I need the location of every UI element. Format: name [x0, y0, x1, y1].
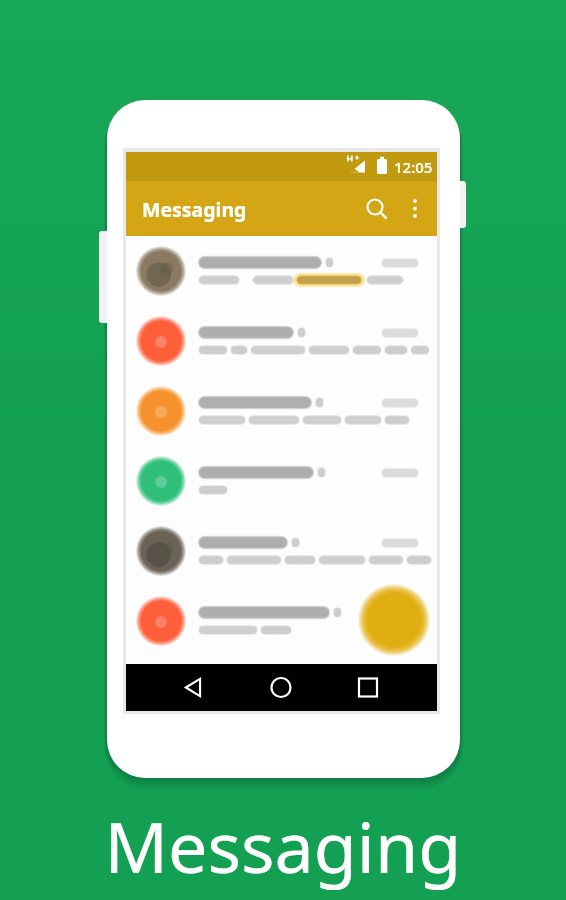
button[interactable]: Home — [238, 664, 324, 711]
button[interactable]: Conversation 6 — [126, 586, 437, 656]
button[interactable]: New message — [366, 592, 422, 648]
button[interactable]: Conversation 2 — [126, 306, 437, 376]
button[interactable]: Conversation 5 — [126, 516, 437, 586]
button[interactable]: Conversation 1 — [126, 236, 437, 306]
button[interactable]: More options — [397, 190, 437, 235]
button[interactable]: Recents — [324, 664, 412, 711]
button[interactable]: Conversation 3 — [126, 376, 437, 446]
button[interactable]: Search — [355, 190, 397, 235]
button[interactable]: Conversation 4 — [126, 446, 437, 516]
button[interactable]: Back — [150, 664, 238, 711]
